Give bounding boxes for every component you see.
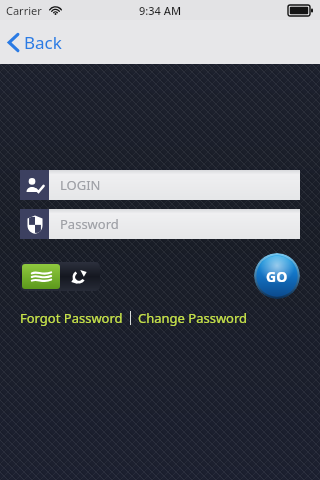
- button[interactable]: Refresh: [60, 264, 98, 289]
- button[interactable]: Back: [4, 26, 66, 59]
- button[interactable]: Forgot Password: [20, 309, 123, 327]
- staticText: Carrier: [6, 3, 42, 18]
- button[interactable]: LOGIN: [20, 170, 300, 200]
- button[interactable]: Change Password: [138, 309, 248, 327]
- staticText: LOGIN: [60, 176, 101, 194]
- button[interactable]: GO: [254, 253, 300, 299]
- staticText: 9:34 AM: [139, 3, 182, 18]
- staticText: GO: [266, 267, 288, 286]
- button[interactable]: Fingerprint login: [22, 264, 60, 289]
- button[interactable]: Password: [20, 209, 300, 239]
- staticText: Password: [60, 215, 119, 233]
- staticText: Back: [24, 31, 62, 54]
